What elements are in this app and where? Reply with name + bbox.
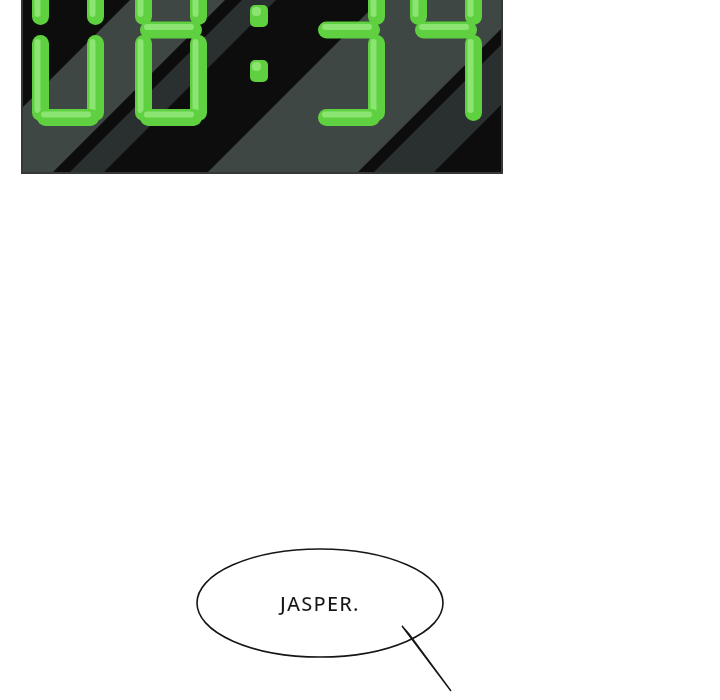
- button[interactable]: Comic panel: alarm clock showing 08:34 a…: [0, 0, 720, 700]
